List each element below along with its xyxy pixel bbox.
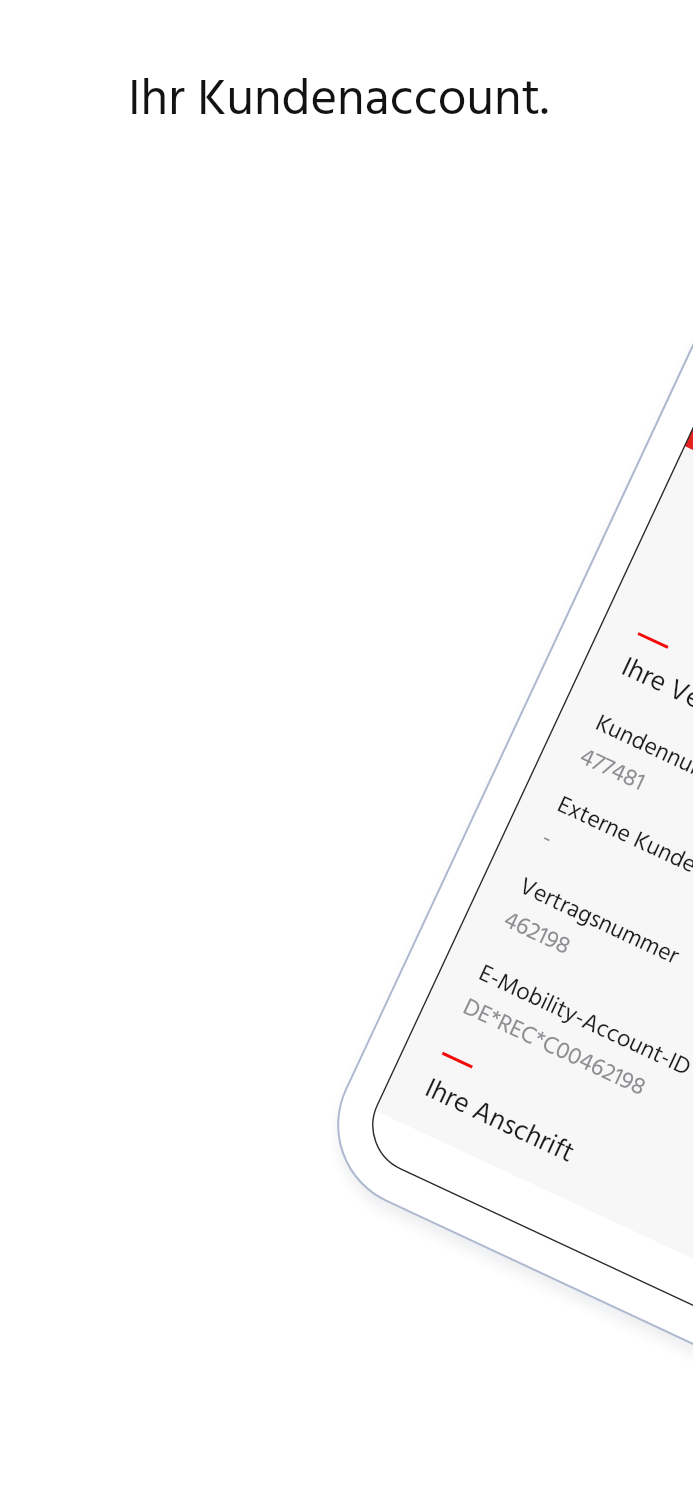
staticText: Ihr Kundenaccount. xyxy=(128,60,549,142)
button[interactable] xyxy=(538,782,693,1022)
staticText: - xyxy=(535,821,559,859)
staticText: Kundennummer xyxy=(588,706,693,810)
staticText: Vertragsnummer xyxy=(512,869,685,976)
staticText: DE*REC*C00462198 xyxy=(456,989,652,1107)
button[interactable] xyxy=(311,271,693,1402)
button[interactable] xyxy=(500,863,693,1104)
staticText: Ihre Anschrift xyxy=(417,1067,582,1176)
button[interactable] xyxy=(577,700,693,941)
button[interactable] xyxy=(460,950,693,1191)
staticText: E-Mobility-Account-ID (EVCO-ID) xyxy=(472,956,693,1134)
other: Kundenaccount Vorschau xyxy=(0,0,616,1291)
staticText: 477481 xyxy=(573,739,651,803)
staticText: 462198 xyxy=(497,902,577,967)
staticText: Ihre Vertragsdaten xyxy=(613,646,693,782)
staticText: Externe Kundennummer xyxy=(550,787,693,927)
